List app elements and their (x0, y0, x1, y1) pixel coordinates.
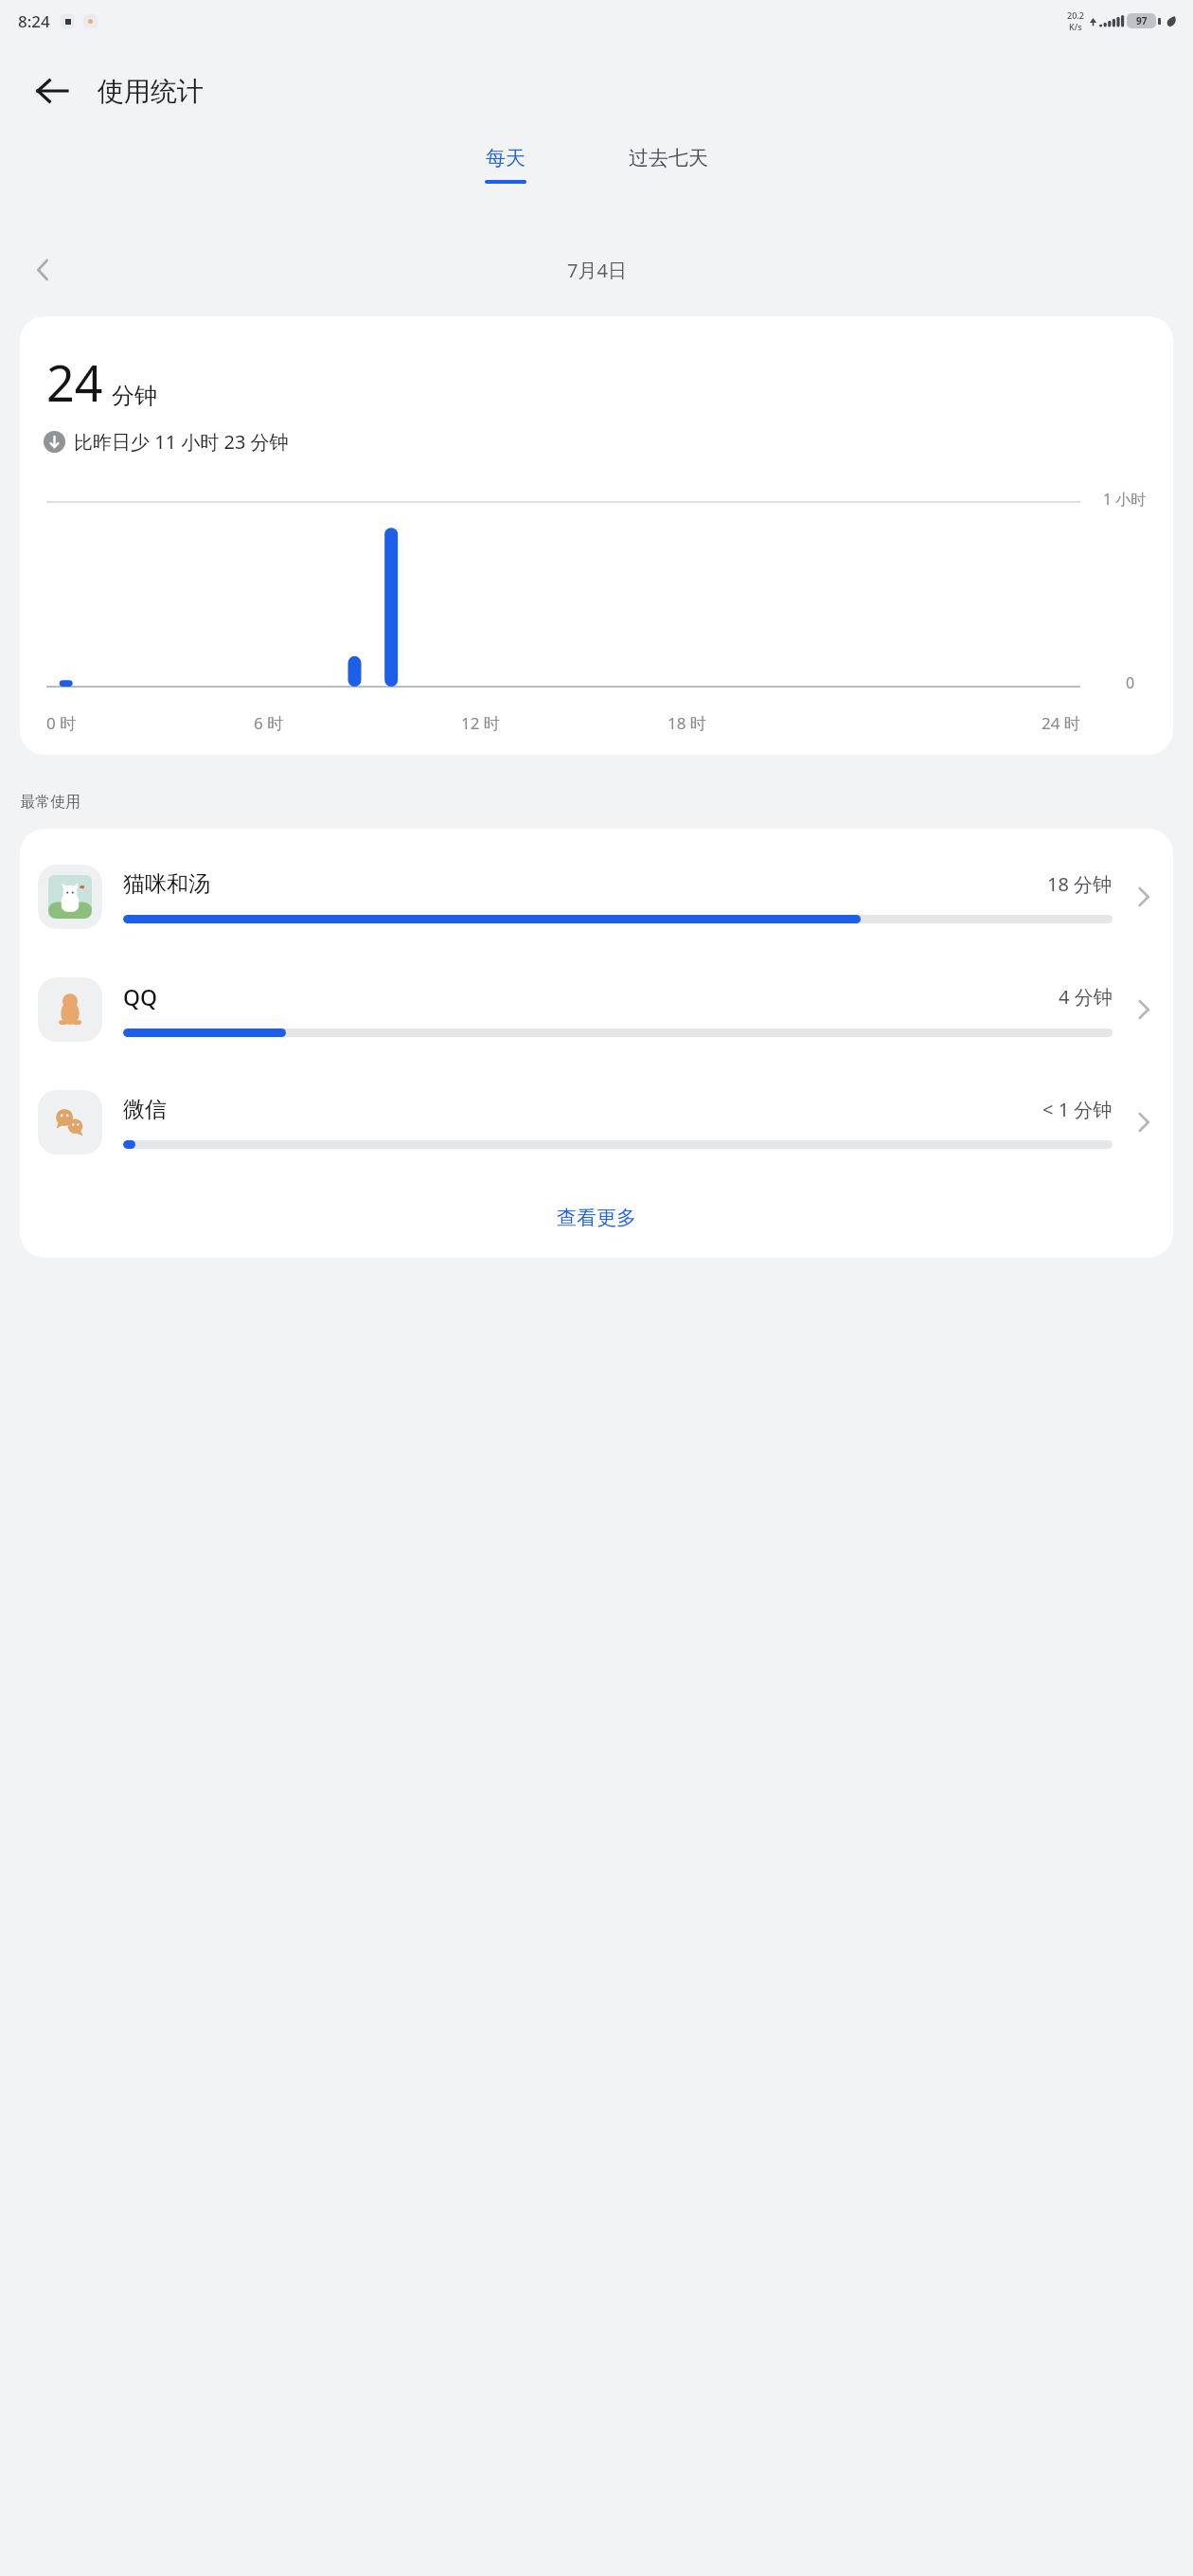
button[interactable]: 微信 (20, 1065, 1173, 1178)
staticText: QQ (123, 982, 1059, 1011)
staticText: 24 时 (1042, 712, 1080, 734)
staticText: 0 时 (46, 712, 77, 734)
staticText: 97 (1136, 14, 1148, 27)
button[interactable]: 过去七天 (600, 140, 737, 176)
staticText: K/s (1069, 21, 1082, 32)
staticText: 微信 (123, 1096, 1042, 1123)
button[interactable]: 查看更多 (20, 1178, 1173, 1258)
staticText: 18 时 (668, 712, 706, 734)
staticText: 4 分钟 (1059, 984, 1113, 1010)
staticText: 6 时 (254, 712, 284, 734)
staticText: 0 (1126, 672, 1135, 693)
staticText: 7月4日 (567, 258, 627, 283)
button[interactable]: 猫咪和汤 (20, 840, 1173, 953)
button[interactable]: Previous day (17, 243, 70, 296)
staticText: 8:24 (18, 10, 50, 32)
staticText: 猫咪和汤 (123, 870, 1047, 898)
button[interactable]: QQ (20, 953, 1173, 1065)
button[interactable]: Back (21, 60, 83, 122)
staticText: 使用统计 (98, 75, 204, 108)
staticText: 最常使用 (20, 793, 80, 812)
staticText: 1 小时 (1103, 489, 1147, 510)
staticText: 分钟 (112, 382, 157, 410)
staticText: 18 分钟 (1047, 871, 1113, 897)
staticText: < 1 分钟 (1042, 1097, 1113, 1122)
staticText: 24 (46, 349, 103, 416)
button[interactable]: 每天 (456, 140, 555, 189)
staticText: 20.2 (1067, 9, 1084, 21)
staticText: 过去七天 (629, 146, 708, 170)
staticText: 比昨日少 11 小时 23 分钟 (74, 429, 289, 455)
staticText: 查看更多 (557, 1206, 636, 1230)
staticText: 12 时 (461, 712, 500, 734)
staticText: 每天 (486, 146, 525, 170)
